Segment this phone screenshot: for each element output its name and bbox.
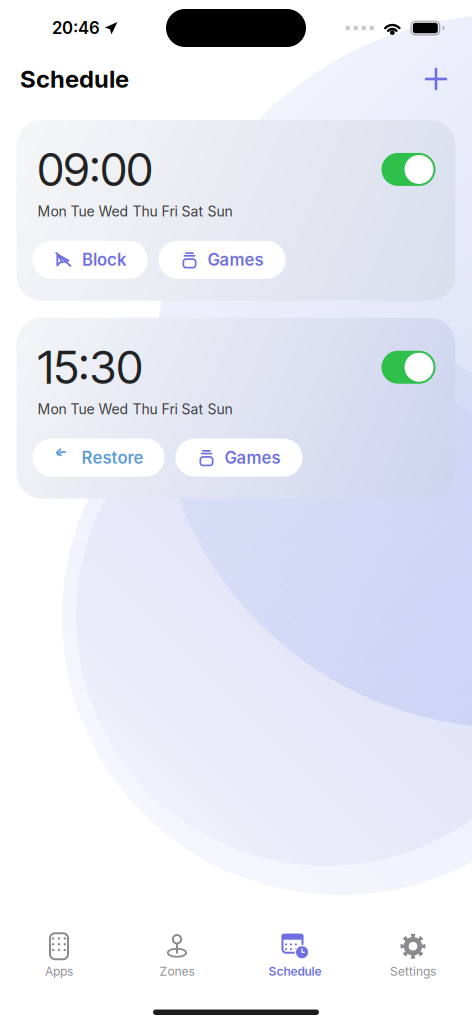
button[interactable]: Schedule	[236, 928, 354, 982]
button[interactable]: Enable schedule	[381, 351, 435, 384]
staticText: Schedule	[20, 64, 129, 93]
staticText: 20:46	[52, 18, 100, 38]
staticText: Mon Tue Wed Thu Fri Sat Sun	[37, 401, 232, 417]
staticText: Mon Tue Wed Thu Fri Sat Sun	[37, 203, 232, 220]
staticText: Block	[82, 250, 126, 270]
button[interactable]: Restore	[32, 439, 164, 477]
staticText: 09:00	[37, 142, 152, 197]
button[interactable]: Add schedule	[413, 57, 459, 101]
button[interactable]: Settings	[354, 928, 472, 982]
staticText: Schedule	[268, 964, 321, 979]
staticText: Settings	[390, 964, 436, 979]
staticText: Zones	[159, 964, 194, 979]
button[interactable]: Apps	[0, 928, 118, 982]
staticText: Games	[207, 250, 263, 270]
staticText: 15:30	[37, 340, 142, 395]
button[interactable]: Block	[32, 241, 147, 279]
button[interactable]: Games	[175, 439, 302, 477]
staticText: Games	[224, 447, 280, 468]
button[interactable]: Zones	[118, 928, 236, 982]
button[interactable]: Games	[158, 241, 285, 279]
staticText: Restore	[81, 447, 143, 468]
staticText: Apps	[45, 964, 73, 979]
button[interactable]: Enable schedule	[381, 153, 435, 186]
